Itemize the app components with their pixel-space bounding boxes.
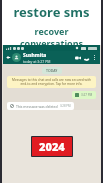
button[interactable]: Back xyxy=(5,54,12,61)
staticText: This message was deleted xyxy=(16,104,58,108)
staticText: recover conversations xyxy=(4,25,99,45)
button[interactable]: Video call xyxy=(73,53,82,62)
staticText: 2024 xyxy=(39,139,65,154)
staticText: restore sms xyxy=(4,3,99,21)
staticText: 3:27 PM xyxy=(81,93,93,97)
staticText: today at 3:27 PM xyxy=(23,59,51,64)
button[interactable]: 2024 xyxy=(32,137,72,156)
staticText: TODAY xyxy=(46,68,58,73)
staticText: 3:28 PM xyxy=(60,104,71,108)
button[interactable]: More options xyxy=(91,54,98,61)
staticText: Sushmita xyxy=(23,52,47,59)
staticText: Messages to this chat and calls are now … xyxy=(10,78,93,86)
button[interactable]: Call xyxy=(82,53,91,62)
